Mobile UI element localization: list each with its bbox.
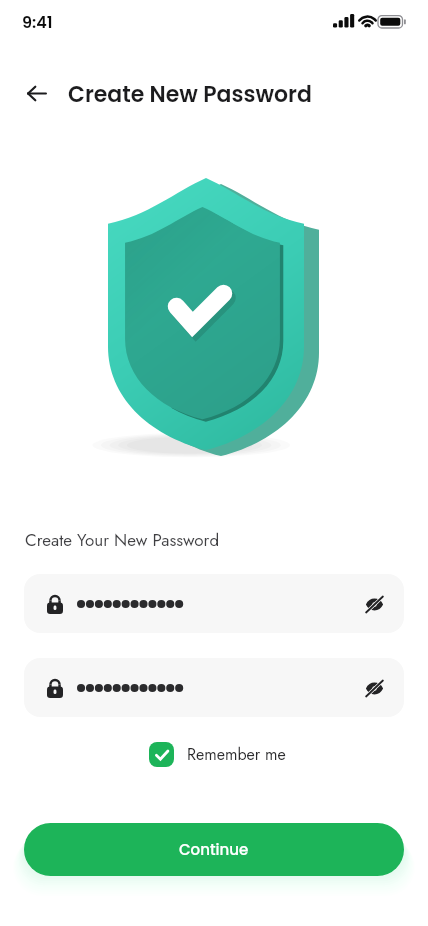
button[interactable]: Toggle password visibility (359, 589, 389, 619)
staticText: Remember me (187, 743, 286, 766)
button[interactable]: Toggle password visibility (359, 673, 389, 703)
button[interactable]: Remember me (149, 742, 286, 767)
other: Remember me (149, 742, 174, 767)
button[interactable]: Toggle password visibility (24, 574, 404, 633)
staticText: Create New Password (68, 79, 312, 110)
staticText: 9:41 (22, 11, 53, 33)
staticText: Continue (179, 839, 249, 860)
staticText: Create Your New Password (25, 528, 220, 553)
button[interactable]: Continue (24, 823, 404, 876)
button[interactable]: Toggle password visibility (24, 658, 404, 717)
button[interactable]: Back (20, 77, 54, 111)
